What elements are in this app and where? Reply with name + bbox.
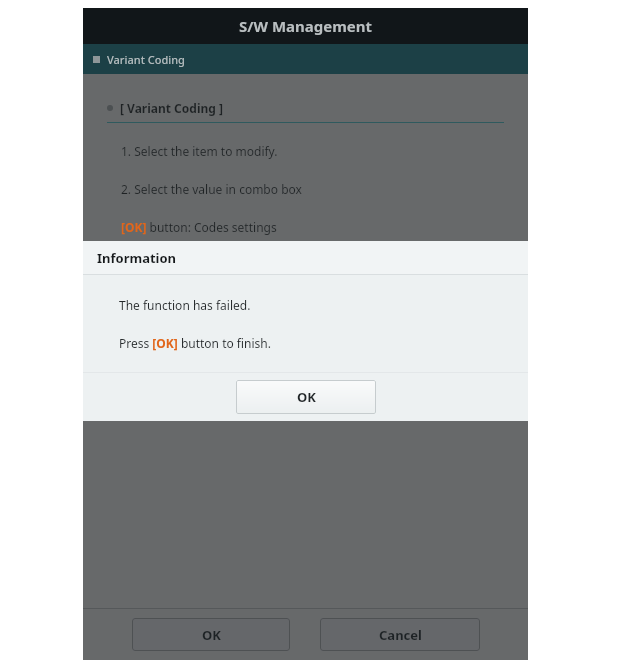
staticText: [OK] button: Codes settings (121, 219, 277, 235)
staticText: [ Variant Coding ] (120, 100, 223, 116)
staticText: 1. Select the item to modify. (121, 143, 278, 159)
staticText: Press [OK] button to finish. (119, 335, 271, 351)
staticText: 2. Select the value in combo box (121, 181, 302, 197)
staticText: Variant Coding (107, 52, 185, 67)
staticText: OK (202, 626, 221, 644)
button[interactable]: Variant Coding (83, 44, 528, 74)
staticText: Cancel (379, 626, 422, 644)
button[interactable]: OK (132, 618, 290, 651)
staticText: Information (97, 249, 177, 267)
staticText: OK (297, 388, 316, 406)
staticText: The function has failed. (119, 297, 251, 313)
staticText: S/W Management (239, 16, 373, 36)
button[interactable]: OK (236, 380, 376, 414)
button[interactable]: Cancel (320, 618, 480, 651)
